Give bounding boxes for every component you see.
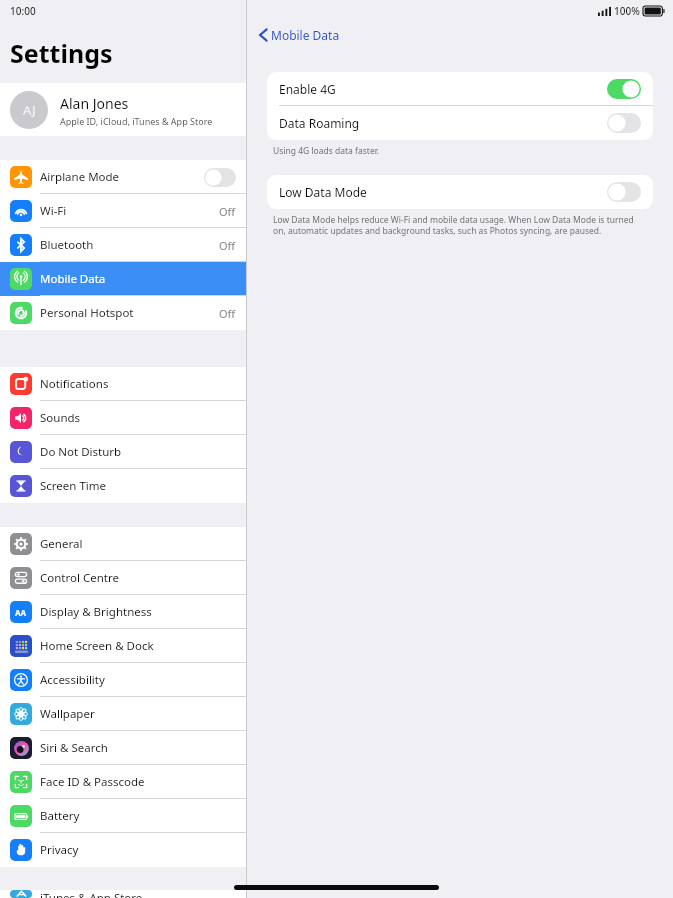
button[interactable]: Sounds [0, 401, 246, 435]
button[interactable]: Accessibility [0, 663, 246, 697]
staticText: Face ID & Passcode [40, 774, 145, 790]
button[interactable]: Data Roaming [267, 106, 653, 140]
staticText: Privacy [40, 842, 79, 858]
staticText: Low Data Mode [279, 184, 367, 200]
staticText: Alan Jones [60, 94, 129, 113]
button[interactable]: Bluetooth [0, 228, 246, 262]
button[interactable]: Mobile Data [0, 262, 246, 296]
button[interactable]: AA [0, 595, 246, 629]
staticText: Data Roaming [279, 115, 360, 131]
staticText: Wallpaper [40, 706, 95, 722]
staticText: 100% [614, 4, 640, 18]
button[interactable]: Control Centre [0, 561, 246, 595]
staticText: Enable 4G [279, 81, 336, 97]
staticText: Apple ID, iCloud, iTunes & App Store [60, 115, 213, 127]
button[interactable]: Wallpaper [0, 697, 246, 731]
button[interactable]: Personal Hotspot [0, 296, 246, 330]
staticText: iTunes & App Store [40, 890, 143, 898]
button[interactable]: Battery [0, 799, 246, 833]
staticText: Mobile Data [40, 271, 106, 287]
staticText: Notifications [40, 376, 109, 392]
button[interactable]: Do Not Disturb [0, 435, 246, 469]
staticText: General [40, 536, 83, 552]
button[interactable]: iTunes & App Store [0, 890, 246, 898]
button[interactable]: Privacy [0, 833, 246, 867]
staticText: Home Screen & Dock [40, 638, 154, 654]
staticText: Control Centre [40, 570, 119, 586]
button[interactable]: Airplane Mode [0, 160, 246, 194]
button[interactable]: Screen Time [0, 469, 246, 503]
staticText: Off [219, 204, 236, 219]
staticText: Airplane Mode [40, 169, 120, 185]
staticText: Sounds [40, 410, 81, 426]
button[interactable]: Wi-Fi [0, 194, 246, 228]
button[interactable]: Home Screen & Dock [0, 629, 246, 663]
staticText: Wi-Fi [40, 203, 67, 219]
staticText: Battery [40, 808, 80, 824]
staticText: Screen Time [40, 478, 107, 494]
staticText: Siri & Search [40, 740, 108, 756]
other: Back [259, 28, 268, 42]
staticText: Using 4G loads data faster. [273, 145, 380, 157]
button[interactable]: General [0, 527, 246, 561]
staticText: Display & Brightness [40, 604, 152, 620]
staticText: Settings [10, 36, 113, 70]
staticText: Accessibility [40, 672, 105, 688]
staticText: Mobile Data [271, 27, 340, 43]
button[interactable]: Notifications [0, 367, 246, 401]
button[interactable]: Enable 4G [267, 72, 653, 106]
staticText: Personal Hotspot [40, 305, 134, 321]
button[interactable]: Back [259, 22, 340, 48]
button[interactable]: Low Data Mode [267, 175, 653, 209]
button[interactable]: AJ [0, 83, 246, 136]
staticText: AJ [23, 101, 36, 119]
staticText: Off [219, 238, 236, 253]
staticText: Do Not Disturb [40, 444, 122, 460]
staticText: AA [15, 607, 27, 618]
staticText: Low Data Mode helps reduce Wi-Fi and mob… [273, 214, 647, 236]
staticText: 10:00 [10, 4, 36, 18]
staticText: Bluetooth [40, 237, 94, 253]
staticText: Off [219, 306, 236, 321]
button[interactable]: Siri & Search [0, 731, 246, 765]
button[interactable]: Face ID & Passcode [0, 765, 246, 799]
